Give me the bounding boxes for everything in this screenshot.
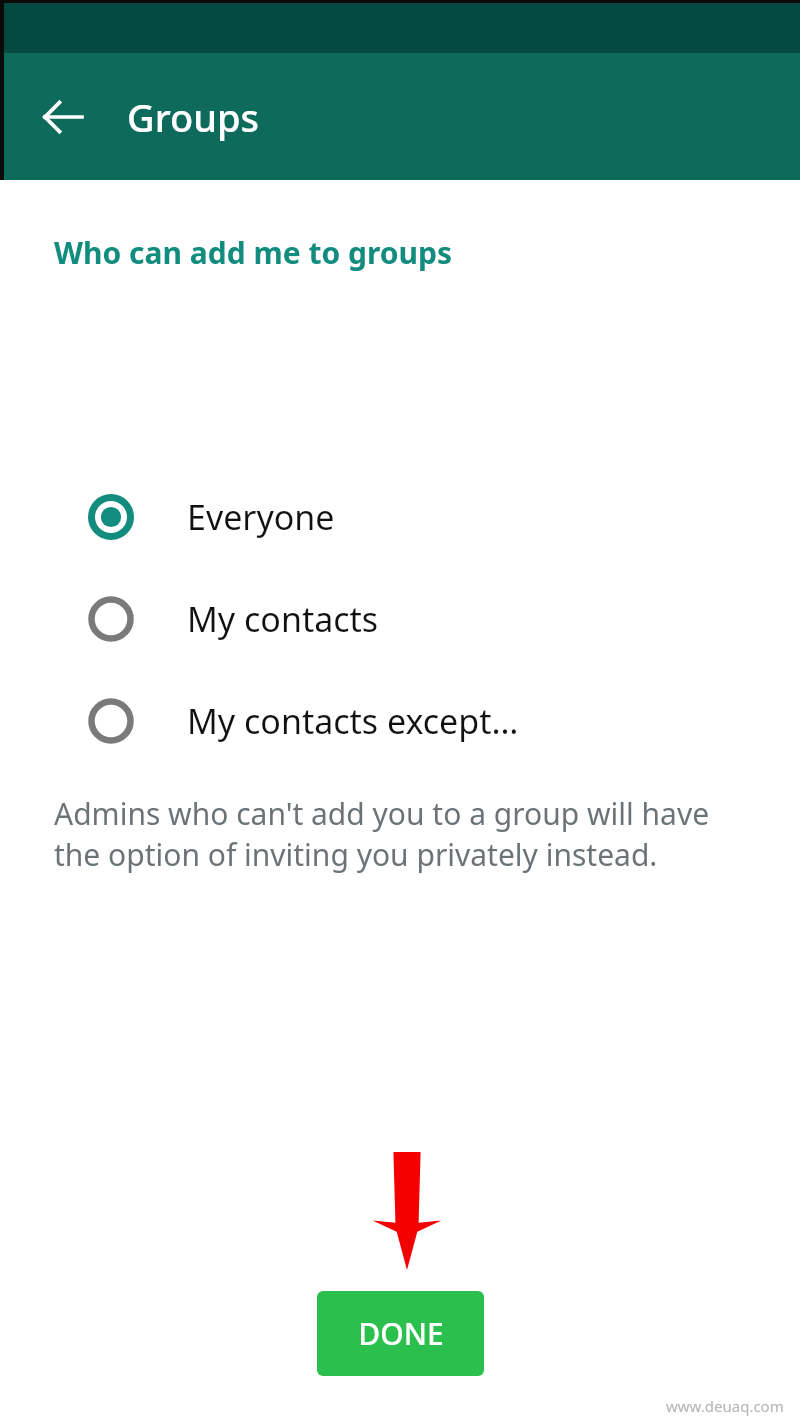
staticText: www.deuaq.com bbox=[666, 1396, 784, 1416]
button[interactable]: Everyone bbox=[0, 472, 800, 562]
staticText: My contacts bbox=[187, 596, 379, 642]
button[interactable]: My contacts bbox=[0, 574, 800, 664]
staticText: Who can add me to groups bbox=[54, 232, 453, 273]
button[interactable]: My contacts except… bbox=[0, 676, 800, 766]
staticText: Everyone bbox=[187, 494, 335, 540]
button[interactable]: DONE bbox=[317, 1291, 484, 1376]
staticText: My contacts except… bbox=[187, 698, 519, 744]
staticText: Admins who can't add you to a group will… bbox=[54, 793, 754, 875]
staticText: DONE bbox=[358, 1313, 444, 1354]
staticText: Groups bbox=[127, 91, 260, 143]
button[interactable]: Back bbox=[30, 84, 96, 150]
